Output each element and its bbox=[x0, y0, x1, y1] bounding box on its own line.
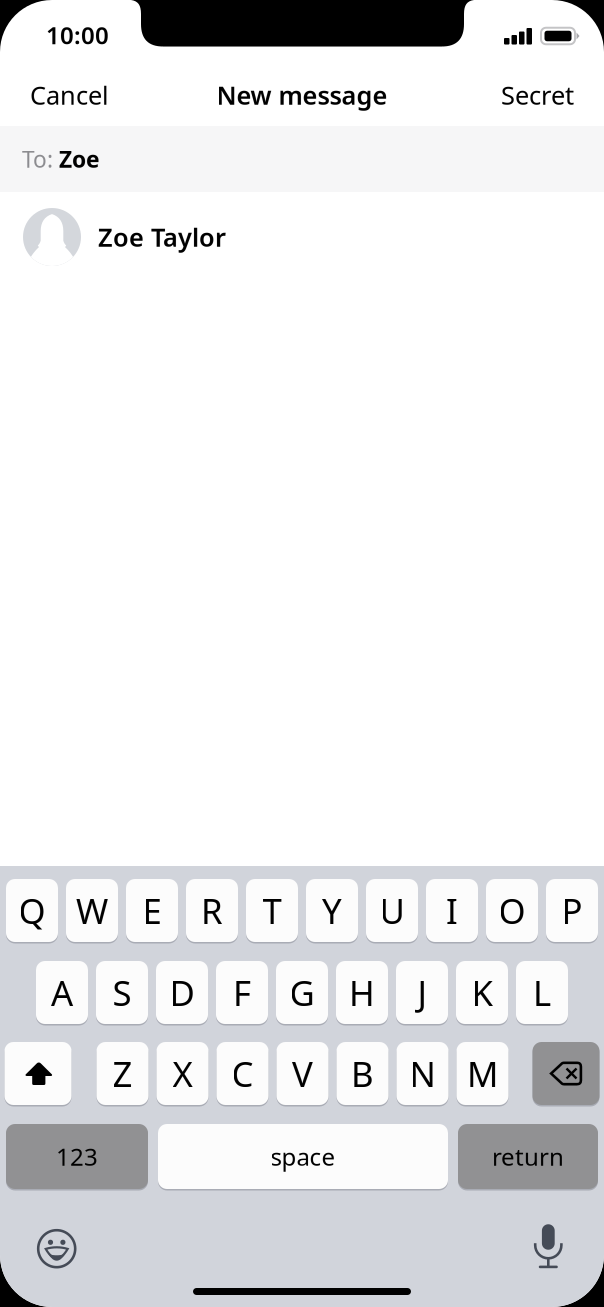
staticText: New message bbox=[216, 78, 387, 112]
button[interactable]: K bbox=[456, 961, 508, 1024]
button[interactable]: H bbox=[336, 961, 388, 1024]
staticText: B bbox=[351, 1050, 374, 1096]
staticText: Z bbox=[112, 1050, 132, 1096]
button[interactable]: Emoji keyboard bbox=[29, 1221, 85, 1277]
button[interactable]: R bbox=[186, 879, 238, 942]
button[interactable]: F bbox=[216, 961, 268, 1024]
button[interactable]: Secret bbox=[464, 67, 574, 123]
staticText: I bbox=[446, 887, 458, 933]
button[interactable]: space bbox=[158, 1124, 448, 1189]
staticText: 10:00 bbox=[46, 19, 109, 51]
staticText: G bbox=[289, 969, 314, 1015]
staticText: W bbox=[76, 887, 108, 933]
button[interactable]: N bbox=[396, 1042, 448, 1105]
button[interactable]: L bbox=[516, 961, 568, 1024]
button[interactable]: Shift bbox=[4, 1042, 71, 1105]
button[interactable]: D bbox=[156, 961, 208, 1024]
staticText: O bbox=[498, 887, 525, 933]
button[interactable]: Delete bbox=[532, 1042, 599, 1105]
button[interactable]: X bbox=[156, 1042, 208, 1105]
staticText: Cancel bbox=[30, 78, 109, 112]
staticText: T bbox=[262, 887, 281, 933]
staticText: S bbox=[112, 969, 131, 1015]
staticText: Q bbox=[18, 887, 45, 933]
button[interactable]: return bbox=[458, 1124, 598, 1189]
button[interactable]: O bbox=[486, 879, 538, 942]
button[interactable]: P bbox=[546, 879, 598, 942]
staticText: P bbox=[561, 887, 582, 933]
staticText: return bbox=[492, 1141, 564, 1172]
button[interactable]: Y bbox=[306, 879, 358, 942]
staticText: D bbox=[169, 969, 194, 1015]
staticText: K bbox=[471, 969, 492, 1015]
staticText: L bbox=[533, 969, 551, 1015]
staticText: E bbox=[142, 887, 161, 933]
button[interactable]: J bbox=[396, 961, 448, 1024]
button[interactable]: Zoe Taylor bbox=[0, 194, 604, 280]
button[interactable]: C bbox=[216, 1042, 268, 1105]
button[interactable]: Q bbox=[6, 879, 58, 942]
button[interactable]: Z bbox=[96, 1042, 148, 1105]
staticText: N bbox=[409, 1050, 435, 1096]
staticText: V bbox=[292, 1050, 313, 1096]
staticText: To: bbox=[22, 144, 59, 174]
staticText: F bbox=[233, 969, 251, 1015]
staticText: U bbox=[379, 887, 404, 933]
staticText: M bbox=[467, 1050, 498, 1096]
button[interactable]: S bbox=[96, 961, 148, 1024]
button[interactable]: V bbox=[276, 1042, 328, 1105]
button[interactable]: W bbox=[66, 879, 118, 942]
staticText: 123 bbox=[56, 1141, 98, 1172]
staticText: A bbox=[51, 969, 73, 1015]
button[interactable]: To: bbox=[0, 126, 604, 192]
button[interactable]: M bbox=[456, 1042, 508, 1105]
button[interactable]: I bbox=[426, 879, 478, 942]
button[interactable]: B bbox=[336, 1042, 388, 1105]
button[interactable]: Dictate bbox=[520, 1218, 576, 1274]
staticText: H bbox=[349, 969, 375, 1015]
button[interactable]: G bbox=[276, 961, 328, 1024]
staticText: J bbox=[417, 969, 426, 1015]
button[interactable]: A bbox=[36, 961, 88, 1024]
staticText: X bbox=[172, 1050, 192, 1096]
staticText: Zoe bbox=[59, 144, 100, 174]
staticText: C bbox=[231, 1050, 253, 1096]
staticText: Zoe Taylor bbox=[98, 220, 226, 254]
staticText: Y bbox=[322, 887, 342, 933]
button[interactable]: E bbox=[126, 879, 178, 942]
staticText: Secret bbox=[501, 78, 574, 112]
staticText: space bbox=[270, 1141, 335, 1172]
button[interactable]: Cancel bbox=[30, 67, 140, 123]
button[interactable]: 123 bbox=[6, 1124, 148, 1189]
button[interactable]: U bbox=[366, 879, 418, 942]
button[interactable]: T bbox=[246, 879, 298, 942]
staticText: R bbox=[201, 887, 223, 933]
